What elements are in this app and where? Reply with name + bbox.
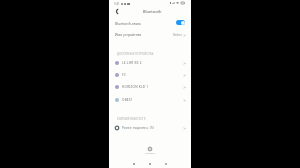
staticText: F3 [122,73,126,77]
staticText: Bluetooth-связь [115,21,141,26]
staticText: LE-LHR BS 2 [122,61,142,65]
staticText: Ранее подключ. (5) [122,126,155,130]
button[interactable]: F3 [109,69,191,81]
staticText: Redmi [173,33,182,37]
staticText: СОХРАНЁННЫЕ УСТР. [117,117,146,121]
button[interactable]: Back [112,7,121,16]
staticText: ДОСТУПНЫЕ УСТРОЙСТВА [117,52,154,56]
button[interactable]: Bluetooth-связь [109,17,191,29]
staticText: 9:41 [114,2,120,6]
button[interactable]: Ранее подключ. (5) [109,122,191,134]
staticText: Имя устройства [115,32,142,37]
button[interactable]: Settings [146,145,154,153]
button[interactable]: LE-LHR BS 2 [109,57,191,69]
button[interactable]: Имя устройства [109,29,191,40]
staticText: HORIZON KLD 1 [122,85,149,89]
button[interactable]: OBEX1 [109,94,191,106]
staticText: Bluetooth [143,9,162,14]
staticText: OBEX1 [122,98,133,102]
button[interactable]: HORIZON KLD 1 [109,81,191,93]
